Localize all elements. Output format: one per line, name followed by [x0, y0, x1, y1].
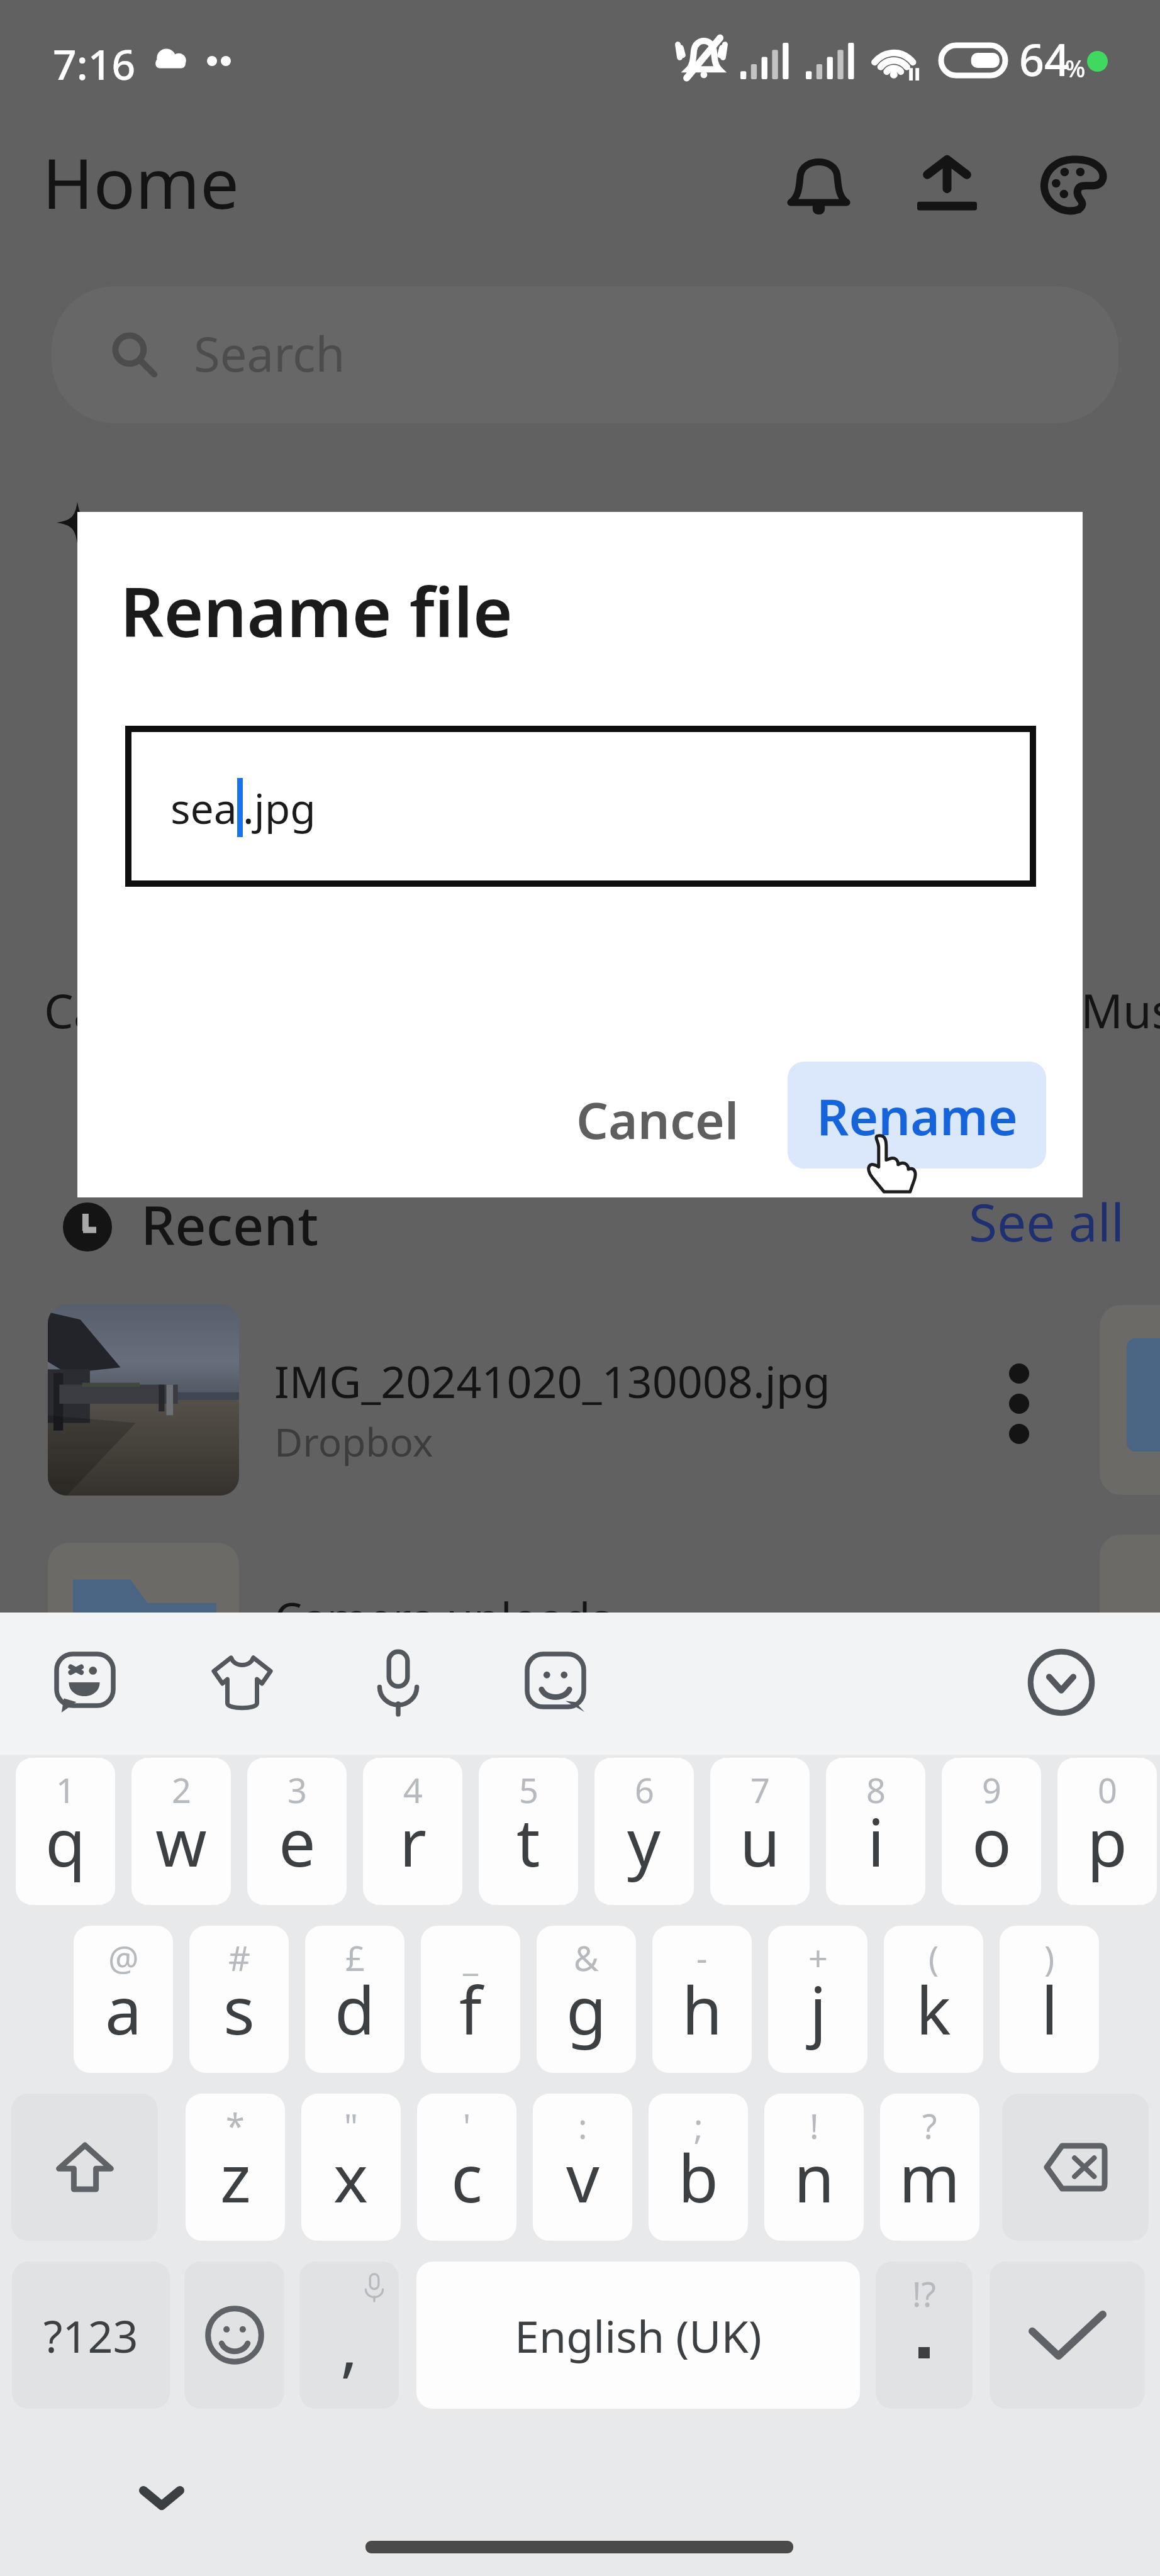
staticText: 4: [403, 1767, 423, 1813]
button[interactable]: +: [768, 1926, 867, 2073]
button[interactable]: 5: [479, 1758, 578, 1905]
staticText: Cancel: [576, 1085, 739, 1153]
staticText: _: [463, 1935, 478, 1981]
staticText: k: [916, 1965, 951, 2054]
staticText: 1: [56, 1767, 75, 1813]
staticText: :: [578, 2102, 588, 2149]
staticText: @: [108, 1935, 139, 1981]
button[interactable]: Theme: [1029, 140, 1121, 231]
button[interactable]: ?123: [12, 2262, 170, 2409]
button[interactable]: Emoji: [184, 2262, 284, 2409]
button[interactable]: 3: [247, 1758, 347, 1905]
button[interactable]: More options: [988, 1353, 1051, 1454]
button[interactable]: Collapse toolbar: [1019, 1640, 1103, 1724]
staticText: -: [696, 1935, 708, 1981]
button[interactable]: Stickers: [44, 1641, 126, 1723]
button[interactable]: 7: [710, 1758, 810, 1905]
button[interactable]: Rename: [788, 1062, 1046, 1169]
button[interactable]: ?: [880, 2094, 979, 2241]
button[interactable]: !: [764, 2094, 864, 2241]
button[interactable]: 2: [131, 1758, 231, 1905]
staticText: 7: [750, 1767, 770, 1813]
staticText: l: [1041, 1965, 1058, 2054]
button[interactable]: Search: [52, 286, 1118, 423]
staticText: !?: [912, 2270, 936, 2317]
staticText: o: [972, 1797, 1012, 1886]
staticText: y: [627, 1797, 661, 1886]
button[interactable]: Hide keyboard: [133, 2475, 190, 2521]
staticText: ?: [922, 2102, 937, 2149]
staticText: +: [808, 1935, 828, 1981]
staticText: e: [279, 1797, 316, 1886]
staticText: ): [1044, 1935, 1055, 1981]
staticText: Music: [1081, 979, 1160, 1042]
staticText: Rename: [817, 1081, 1018, 1150]
staticText: q: [45, 1797, 86, 1886]
button[interactable]: ": [301, 2094, 401, 2241]
button[interactable]: Upload: [901, 140, 993, 231]
button[interactable]: Done: [990, 2262, 1145, 2409]
staticText: 6: [635, 1767, 654, 1813]
staticText: Camera uploads: [274, 1587, 611, 1647]
staticText: m: [899, 2133, 961, 2222]
button[interactable]: ,: [299, 2262, 399, 2409]
button[interactable]: *: [186, 2094, 285, 2241]
button[interactable]: _: [421, 1926, 520, 2073]
button[interactable]: Avatar clothing: [201, 1641, 283, 1723]
button[interactable]: Cancel: [558, 1063, 757, 1175]
staticText: Search: [194, 321, 345, 386]
staticText: ;: [694, 2102, 703, 2149]
staticText: Suggested for you: [141, 497, 613, 570]
staticText: i: [867, 1797, 884, 1886]
staticText: Dropbox: [274, 1415, 433, 1468]
staticText: ,: [340, 2301, 358, 2390]
button[interactable]: Emoji: [515, 1641, 596, 1723]
button[interactable]: sea: [125, 726, 1036, 887]
button[interactable]: (: [884, 1926, 983, 2073]
button[interactable]: 1: [16, 1758, 115, 1905]
button[interactable]: 8: [826, 1758, 925, 1905]
staticText: See all: [969, 1186, 1125, 1257]
staticText: ": [344, 2102, 359, 2149]
button[interactable]: ': [417, 2094, 516, 2241]
button[interactable]: ): [1000, 1926, 1099, 2073]
staticText: s: [223, 1965, 255, 2054]
button[interactable]: 4: [363, 1758, 462, 1905]
staticText: z: [220, 2133, 251, 2222]
staticText: #: [228, 1935, 250, 1981]
staticText: 7:16: [53, 35, 136, 92]
staticText: 64: [1019, 29, 1070, 89]
button[interactable]: :: [533, 2094, 632, 2241]
staticText: x: [333, 2133, 369, 2222]
staticText: h: [682, 1965, 723, 2054]
button[interactable]: #: [189, 1926, 289, 2073]
staticText: Camera uploads: [44, 979, 401, 1042]
button[interactable]: English (UK): [416, 2262, 860, 2409]
staticText: 8: [866, 1767, 886, 1813]
button[interactable]: 6: [594, 1758, 694, 1905]
button[interactable]: £: [305, 1926, 404, 2073]
button[interactable]: ;: [649, 2094, 748, 2241]
staticText: 2: [172, 1767, 191, 1813]
button[interactable]: See all: [969, 1186, 1125, 1257]
staticText: g: [566, 1965, 606, 2054]
button[interactable]: !?: [876, 2262, 973, 2409]
button[interactable]: Shift: [11, 2094, 158, 2241]
staticText: IMG_20241020_130008.jpg: [274, 1351, 830, 1411]
button[interactable]: -: [652, 1926, 752, 2073]
staticText: v: [566, 2133, 600, 2222]
staticText: w: [155, 1797, 207, 1886]
staticText: ?123: [43, 2306, 138, 2365]
button[interactable]: &: [537, 1926, 636, 2073]
button[interactable]: Notifications: [772, 140, 864, 231]
button[interactable]: Backspace: [1002, 2094, 1149, 2241]
staticText: %: [1065, 52, 1086, 84]
staticText: 9: [982, 1767, 1001, 1813]
button[interactable]: 0: [1057, 1758, 1157, 1905]
button[interactable]: 9: [942, 1758, 1041, 1905]
staticText: 5: [519, 1767, 538, 1813]
button[interactable]: Voice input: [357, 1641, 439, 1723]
button[interactable]: @: [74, 1926, 173, 2073]
staticText: a: [105, 1965, 142, 2054]
staticText: j: [810, 1965, 827, 2054]
